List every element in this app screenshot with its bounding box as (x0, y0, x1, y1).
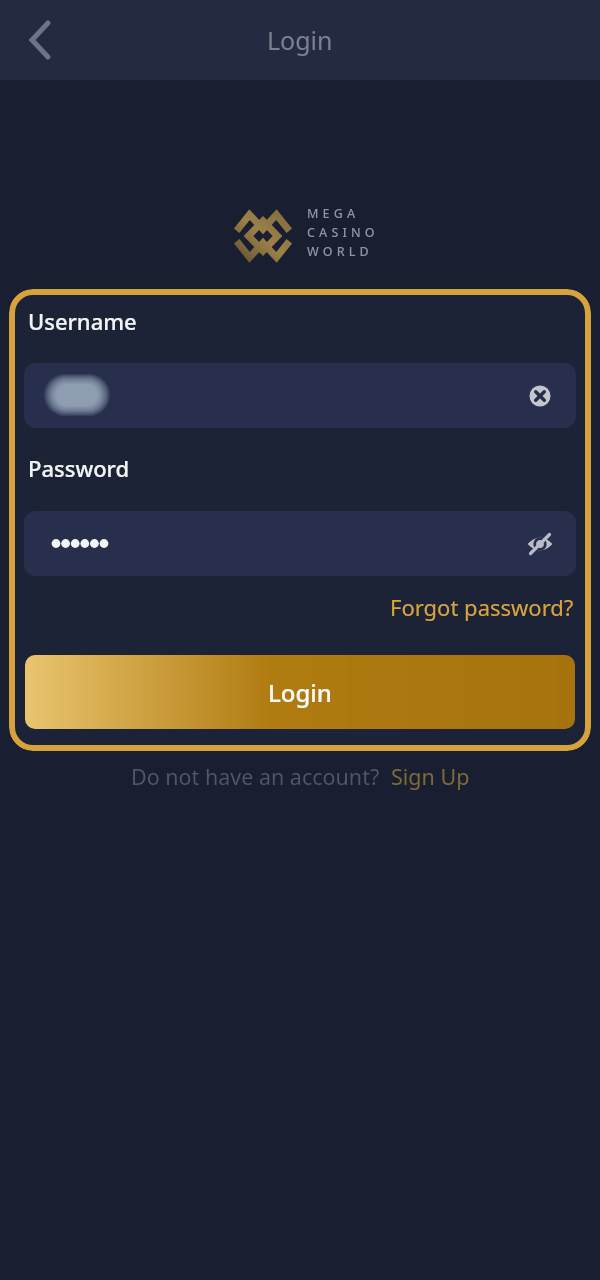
staticText: Username (28, 306, 137, 336)
button[interactable] (24, 363, 576, 428)
staticText: CASINO (307, 224, 379, 241)
staticText: Password (28, 453, 130, 483)
staticText: Login (267, 23, 333, 57)
button[interactable] (12, 12, 68, 68)
button[interactable]: Login (25, 655, 575, 729)
button[interactable]: Sign Up (391, 762, 470, 791)
button[interactable] (24, 511, 576, 576)
staticText: Do not have an account? (131, 762, 391, 791)
staticText: MEGA (307, 205, 360, 222)
staticText: Login (268, 676, 332, 709)
button[interactable]: Forgot password? (390, 592, 574, 622)
staticText: WORLD (307, 243, 373, 260)
